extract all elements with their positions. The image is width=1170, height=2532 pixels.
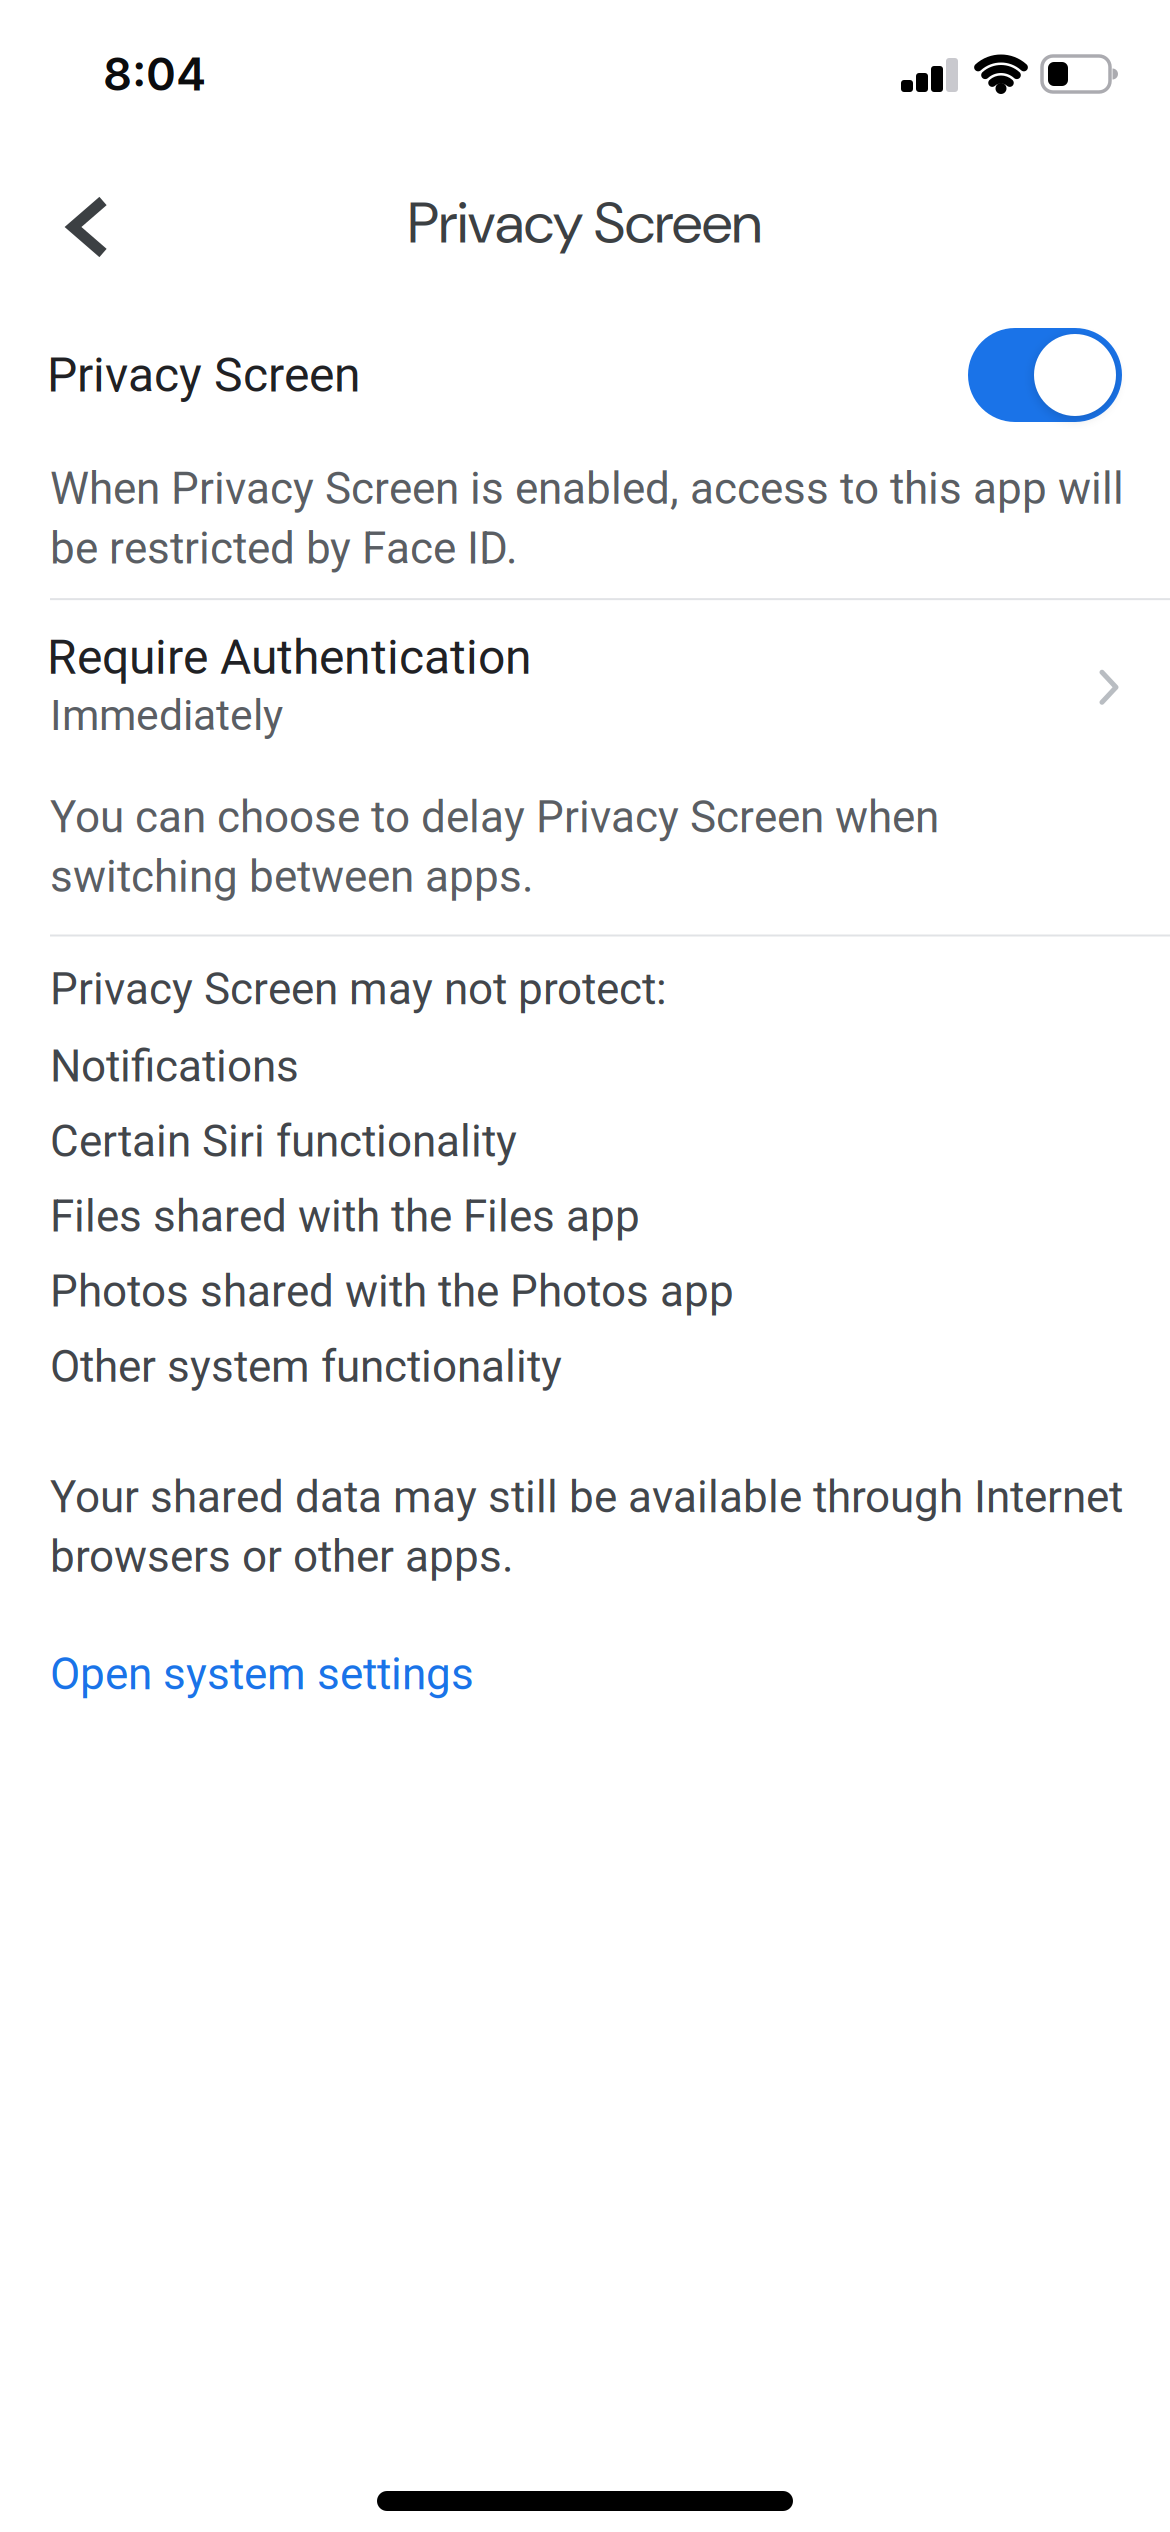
staticText: Notifications [50,1041,299,1092]
staticText: Immediately [50,690,283,740]
button[interactable]: Privacy Screen [968,328,1122,422]
staticText: Other system functionality [50,1341,562,1392]
staticText: When Privacy Screen is enabled, access t… [50,463,1124,574]
staticText: Files shared with the Files app [50,1191,640,1242]
button[interactable]: Require Authentication [0,600,1170,740]
staticText: Require Authentication [47,629,532,685]
staticText: Privacy Screen may not protect: [50,963,667,1015]
button[interactable]: Open system settings [0,1582,474,1700]
staticText: Certain Siri functionality [50,1116,517,1167]
staticText: Privacy Screen [408,186,762,260]
staticText: Open system settings [50,1648,474,1700]
staticText: Your shared data may still be available … [50,1471,1123,1582]
staticText: Photos shared with the Photos app [50,1266,734,1317]
staticText: 8:04 [103,47,206,101]
staticText: You can choose to delay Privacy Screen w… [50,791,939,902]
staticText: Privacy Screen [47,347,361,403]
button[interactable]: Back [73,198,104,256]
